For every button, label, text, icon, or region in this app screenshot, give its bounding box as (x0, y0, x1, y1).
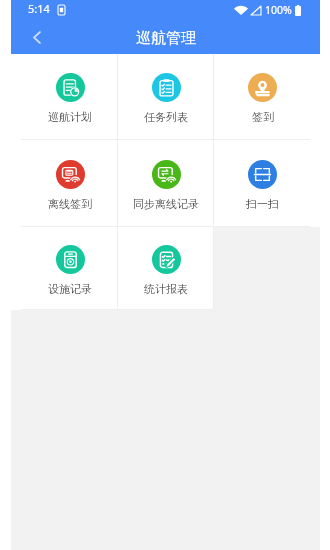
staticText: 设施记录 (48, 282, 92, 296)
button[interactable]: 扫一扫 (214, 140, 310, 227)
staticText: 统计报表 (144, 282, 188, 296)
staticText: 扫一扫 (246, 197, 279, 211)
staticText: 5:14 (28, 1, 50, 16)
staticText: 离线签到 (48, 197, 92, 211)
button[interactable]: Back (11, 20, 62, 54)
staticText: 签到 (252, 110, 274, 124)
button[interactable]: 任务列表 (118, 54, 214, 140)
button[interactable]: 设施记录 (21, 227, 118, 310)
button[interactable]: 离线签到 (21, 140, 118, 227)
button[interactable]: 签到 (214, 54, 310, 140)
staticText: 任务列表 (144, 110, 188, 124)
button[interactable]: 统计报表 (118, 227, 214, 310)
staticText: 巡航计划 (48, 110, 92, 124)
staticText: 巡航管理 (136, 29, 196, 48)
button[interactable]: 巡航计划 (21, 54, 118, 140)
staticText: 100% (265, 3, 292, 17)
staticText: 同步离线记录 (133, 197, 199, 211)
button[interactable]: 同步离线记录 (118, 140, 214, 227)
